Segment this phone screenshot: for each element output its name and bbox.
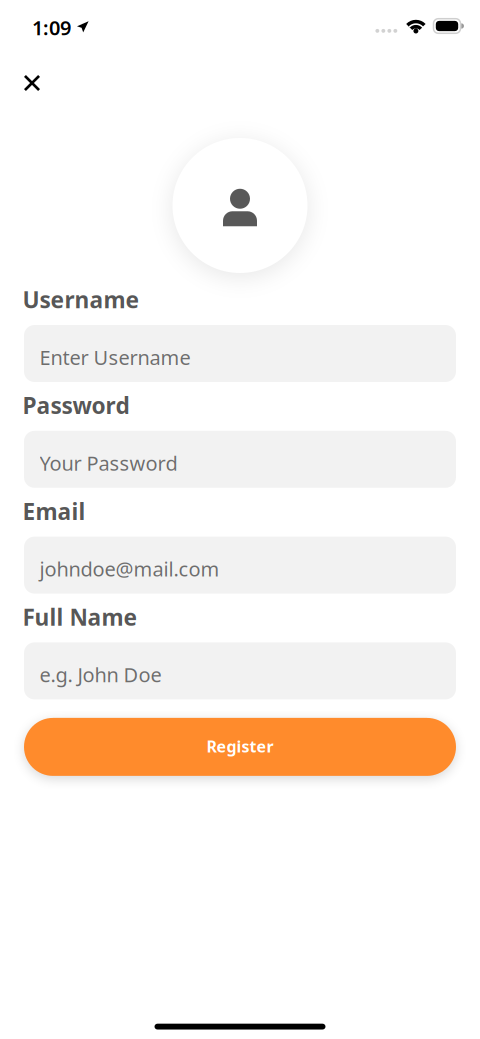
staticText: Email [22, 496, 85, 526]
staticText: Full Name [22, 602, 137, 632]
staticText: Enter Username [39, 344, 190, 370]
button[interactable]: Your Password [24, 431, 456, 488]
button[interactable]: Register [24, 718, 456, 776]
button[interactable]: Enter Username [24, 325, 456, 382]
staticText: johndoe@mail.com [39, 555, 219, 582]
staticText: Register [206, 736, 273, 757]
staticText: Username [22, 284, 139, 314]
button[interactable]: Close [10, 61, 54, 105]
button[interactable]: johndoe@mail.com [24, 537, 456, 594]
staticText: e.g. John Doe [39, 661, 161, 688]
button[interactable]: e.g. John Doe [24, 642, 456, 699]
staticText: Password [22, 390, 129, 420]
staticText: 1:09 [32, 14, 71, 41]
staticText: Your Password [39, 450, 177, 476]
